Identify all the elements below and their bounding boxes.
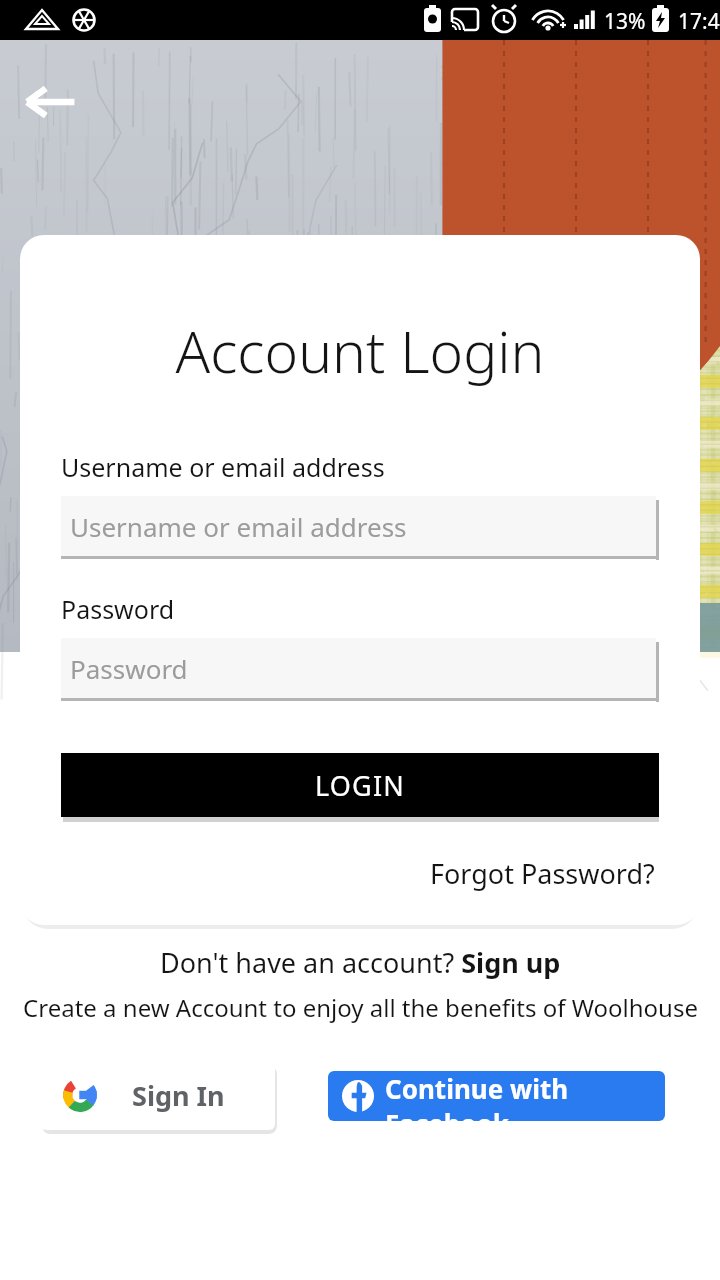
button[interactable]: Back — [20, 72, 80, 132]
staticText: Password — [70, 651, 188, 686]
staticText: Continue with Facebook — [385, 1071, 665, 1121]
staticText: Sign In — [132, 1077, 225, 1114]
staticText: 13% — [604, 7, 646, 36]
button[interactable]: Username or email address — [61, 496, 659, 559]
button[interactable]: Sign In — [40, 1060, 275, 1130]
staticText: Forgot Password? — [430, 855, 655, 892]
staticText: LOGIN — [315, 767, 406, 804]
staticText: 17:40 — [678, 7, 720, 36]
staticText: Don't have an account? Sign up — [160, 944, 561, 981]
staticText: Password — [61, 592, 175, 626]
staticText: Username or email address — [61, 450, 385, 484]
button[interactable]: Forgot Password? — [426, 851, 659, 896]
staticText: Username or email address — [70, 509, 407, 544]
button[interactable]: LOGIN — [61, 753, 659, 817]
button[interactable]: Continue with Facebook — [328, 1071, 665, 1121]
button[interactable]: Password — [61, 638, 659, 701]
staticText: Account Login — [61, 312, 659, 390]
staticText: Create a new Account to enjoy all the be… — [23, 991, 698, 1024]
button[interactable]: Don't have an account? Sign up — [160, 944, 561, 981]
